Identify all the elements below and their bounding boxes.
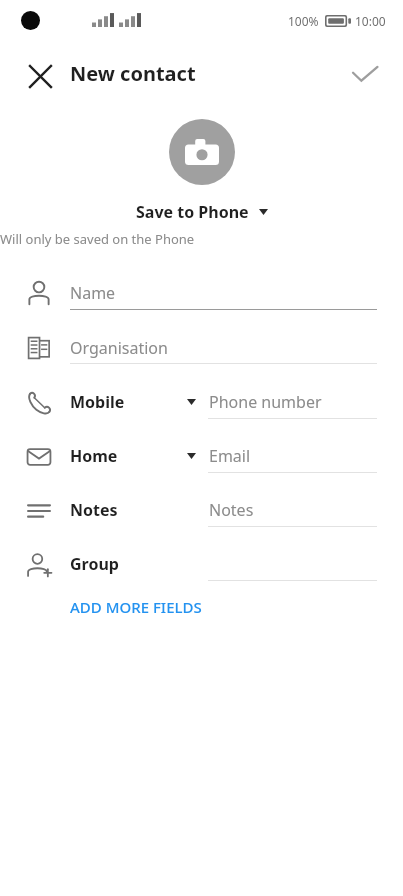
staticText: Notes bbox=[209, 499, 254, 521]
button[interactable]: Add photo bbox=[169, 119, 235, 185]
staticText: Notes bbox=[70, 499, 118, 521]
button[interactable]: Save to Phone bbox=[136, 201, 268, 223]
button[interactable]: Name bbox=[0, 266, 403, 320]
button[interactable]: Group bbox=[0, 538, 403, 592]
staticText: Email bbox=[209, 445, 251, 467]
button[interactable]: Save bbox=[339, 48, 391, 100]
button[interactable]: Notes bbox=[0, 484, 403, 538]
button[interactable]: Phone bbox=[0, 376, 403, 430]
button[interactable]: Close bbox=[14, 50, 66, 102]
button[interactable]: Email bbox=[0, 430, 403, 484]
staticText: ADD MORE FIELDS bbox=[70, 597, 202, 617]
staticText: Will only be saved on the Phone bbox=[0, 230, 403, 248]
staticText: Home bbox=[70, 445, 118, 467]
staticText: Phone number bbox=[209, 391, 322, 413]
staticText: New contact bbox=[70, 60, 196, 87]
staticText: Organisation bbox=[70, 337, 168, 359]
staticText: 100% bbox=[288, 13, 319, 29]
staticText: Save to Phone bbox=[136, 201, 249, 223]
staticText: Mobile bbox=[70, 391, 125, 413]
staticText: 10:00 bbox=[355, 13, 386, 29]
button[interactable]: ADD MORE FIELDS bbox=[70, 597, 202, 617]
button[interactable]: Organisation bbox=[0, 321, 403, 375]
staticText: Group bbox=[70, 553, 119, 575]
staticText: Name bbox=[70, 282, 116, 304]
